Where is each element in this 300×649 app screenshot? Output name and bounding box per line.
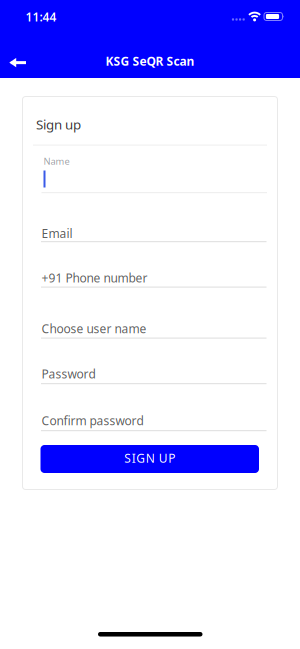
button[interactable] [8,54,30,70]
button[interactable]: Confirm password [41,401,275,431]
staticText: KSG SeQR Scan [105,53,194,69]
staticText: Name [43,155,69,167]
staticText: Sign up [36,115,81,133]
button[interactable]: Name [41,151,275,194]
staticText: Choose user name [41,321,146,336]
button[interactable]: Choose user name [41,309,275,339]
staticText: SIGN UP [124,450,175,466]
staticText: 11:44 [25,9,56,25]
staticText: Email [41,225,72,241]
staticText: Confirm password [41,413,143,429]
button[interactable]: Password [41,354,275,384]
button[interactable]: SIGN UP [40,445,259,473]
button[interactable]: +91 Phone number [41,258,275,288]
button[interactable]: Email [41,212,275,242]
staticText: Password [41,366,95,382]
staticText: +91 Phone number [41,270,147,286]
